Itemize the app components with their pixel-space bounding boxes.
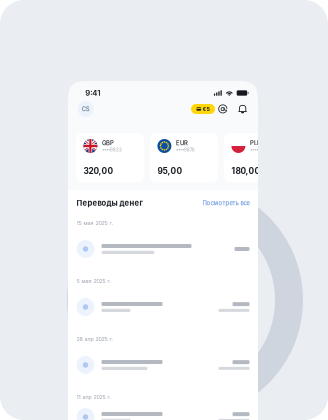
staticText: EUR <box>176 140 188 147</box>
staticText: Посмотреть все <box>202 199 249 207</box>
staticText: ••••9833 <box>102 147 122 152</box>
button[interactable]: Messages <box>218 104 228 114</box>
staticText: PLN <box>250 140 261 147</box>
staticText: ••••9876 <box>176 147 195 152</box>
button[interactable]: Bonus balance <box>191 104 215 114</box>
staticText: 15 мая 2025 г. <box>76 220 113 226</box>
staticText: 320,00 <box>83 166 113 176</box>
button[interactable]: GBP <box>76 133 144 182</box>
staticText: 5 мая 2025 г. <box>76 278 111 284</box>
button[interactable]: Transaction <box>68 236 258 262</box>
staticText: Переводы денег <box>76 198 142 208</box>
button[interactable]: Transaction <box>68 404 258 420</box>
staticText: 180,00 <box>231 166 260 176</box>
button[interactable]: Notifications <box>238 104 247 114</box>
staticText: ••••1122 <box>250 147 268 152</box>
staticText: €5 <box>202 106 209 112</box>
button[interactable]: Transaction <box>68 294 258 320</box>
staticText: 11 апр 2025 г. <box>76 394 111 400</box>
staticText: GBP <box>102 140 114 147</box>
staticText: CS <box>82 105 90 113</box>
button[interactable]: EUR <box>150 133 218 182</box>
staticText: 28 апр 2025 г. <box>76 336 113 342</box>
button[interactable]: Profile <box>78 101 94 117</box>
button[interactable]: PLN <box>224 133 292 182</box>
staticText: 95,00 <box>157 166 182 176</box>
button[interactable]: Посмотреть все <box>202 199 249 207</box>
button[interactable]: Transaction <box>68 352 258 378</box>
staticText: 9:41 <box>85 88 100 98</box>
